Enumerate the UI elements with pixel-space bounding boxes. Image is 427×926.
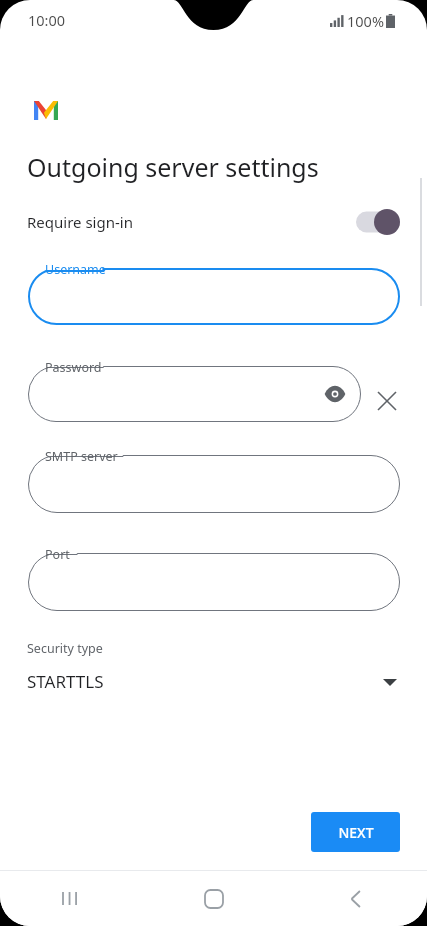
button[interactable]: Back <box>285 871 427 926</box>
button[interactable]: Show password <box>320 379 350 409</box>
staticText: NEXT <box>338 823 374 842</box>
staticText: Security type <box>27 640 103 657</box>
staticText: 100% <box>347 11 384 31</box>
button[interactable]: Home <box>143 871 285 926</box>
button[interactable]: Security type <box>0 635 427 703</box>
button[interactable] <box>356 209 400 235</box>
staticText: Require sign-in <box>27 212 133 232</box>
staticText: Password <box>45 359 102 376</box>
staticText: Port <box>45 546 70 563</box>
staticText: Outgoing server settings <box>27 150 319 184</box>
button[interactable]: Recent apps <box>0 871 143 926</box>
button[interactable]: SMTP server <box>28 455 400 513</box>
button[interactable]: Password <box>28 366 361 422</box>
button[interactable]: Clear <box>373 387 401 415</box>
button[interactable]: Port <box>28 553 400 611</box>
staticText: Username <box>45 261 106 278</box>
button[interactable]: NEXT <box>311 812 400 852</box>
staticText: STARTTLS <box>27 670 104 693</box>
button[interactable]: Require sign-in <box>0 200 427 244</box>
staticText: SMTP server <box>45 448 118 465</box>
staticText: 10:00 <box>28 10 66 30</box>
button[interactable]: Username <box>28 268 400 325</box>
